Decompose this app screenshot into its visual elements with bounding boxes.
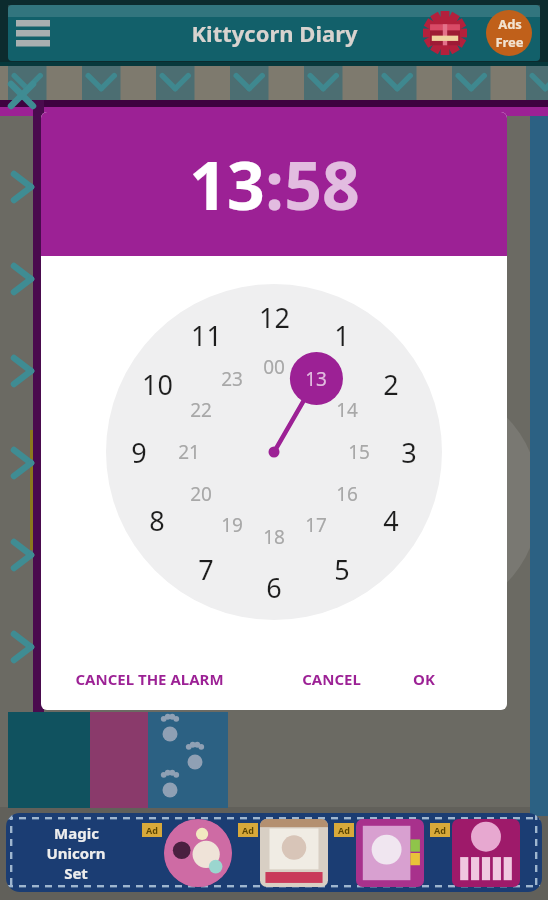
staticText: 10 — [142, 366, 173, 403]
button[interactable]: 11 — [184, 313, 228, 357]
staticText: CANCEL — [302, 669, 361, 689]
staticText: 12 — [259, 299, 290, 336]
staticText: Set — [64, 863, 88, 883]
staticText: 8 — [149, 502, 165, 539]
staticText: 2 — [383, 366, 399, 403]
button[interactable]: 10 — [135, 362, 179, 406]
staticText: 15 — [348, 439, 370, 465]
staticText: OK — [413, 669, 435, 689]
button[interactable]: CANCEL THE ALARM — [71, 665, 228, 693]
button[interactable]: 2 — [369, 362, 413, 406]
button[interactable]: 00 — [252, 345, 296, 389]
button[interactable]: 4 — [369, 498, 413, 542]
button[interactable]: 6 — [252, 565, 296, 609]
button[interactable]: 12 — [252, 295, 296, 339]
button[interactable]: 13 — [189, 139, 265, 229]
staticText: Ads — [498, 15, 522, 33]
staticText: 16 — [336, 481, 358, 507]
button[interactable]: Free Prize — [422, 10, 468, 56]
button[interactable]: 5 — [320, 547, 364, 591]
staticText: 58 — [284, 139, 360, 229]
staticText: 3 — [401, 434, 417, 471]
staticText: Unicorn — [46, 843, 106, 863]
staticText: 4 — [383, 502, 399, 539]
staticText: 13 — [305, 366, 327, 392]
staticText: 9 — [131, 434, 147, 471]
staticText: 18 — [263, 524, 285, 550]
button[interactable]: 13 — [294, 357, 338, 401]
button[interactable]: Advertisement 1 — [164, 819, 232, 887]
button[interactable]: 14 — [325, 388, 369, 432]
staticText: Ad — [338, 824, 350, 836]
button[interactable]: Ads Free — [484, 8, 534, 58]
staticText: Ad — [146, 824, 158, 836]
staticText: 7 — [198, 551, 214, 588]
button[interactable]: Open menu — [10, 10, 56, 56]
staticText: 11 — [191, 317, 222, 354]
staticText: Ad — [242, 824, 254, 836]
button[interactable]: CANCEL — [298, 665, 365, 693]
button[interactable]: 20 — [179, 472, 223, 516]
button[interactable]: 9 — [117, 430, 161, 474]
staticText: 19 — [221, 512, 243, 538]
button[interactable]: OK — [409, 665, 439, 693]
button[interactable]: 1 — [320, 313, 364, 357]
button[interactable]: Advertisement 3 — [356, 819, 424, 887]
button[interactable]: 22 — [179, 388, 223, 432]
button[interactable]: 16 — [325, 472, 369, 516]
staticText: 20 — [190, 481, 212, 507]
button[interactable]: 7 — [184, 547, 228, 591]
staticText: Magic — [54, 823, 99, 843]
staticText: 5 — [334, 551, 350, 588]
button[interactable]: 3 — [387, 430, 431, 474]
staticText: 14 — [336, 397, 358, 423]
staticText: 00 — [263, 354, 285, 380]
staticText: : — [265, 139, 284, 229]
staticText: 23 — [221, 366, 243, 392]
button[interactable]: 8 — [135, 498, 179, 542]
button[interactable]: 21 — [167, 430, 211, 474]
staticText: 21 — [178, 439, 200, 465]
staticText: 17 — [305, 512, 327, 538]
staticText: 22 — [190, 397, 212, 423]
button[interactable]: 23 — [210, 357, 254, 401]
button[interactable]: 15 — [337, 430, 381, 474]
button[interactable]: 18 — [252, 515, 296, 559]
button[interactable]: 17 — [294, 503, 338, 547]
staticText: CANCEL THE ALARM — [75, 669, 224, 689]
button[interactable]: Advertisement 4 — [452, 819, 520, 887]
button[interactable]: 58 — [284, 139, 360, 229]
button[interactable]: 19 — [210, 503, 254, 547]
staticText: Free — [495, 33, 524, 51]
staticText: 6 — [266, 569, 282, 606]
staticText: Kittycorn Diary — [191, 18, 358, 48]
staticText: 1 — [334, 317, 350, 354]
button[interactable]: Advertisement 2 — [260, 819, 328, 887]
staticText: 13 — [189, 139, 265, 229]
staticText: Ad — [434, 824, 446, 836]
